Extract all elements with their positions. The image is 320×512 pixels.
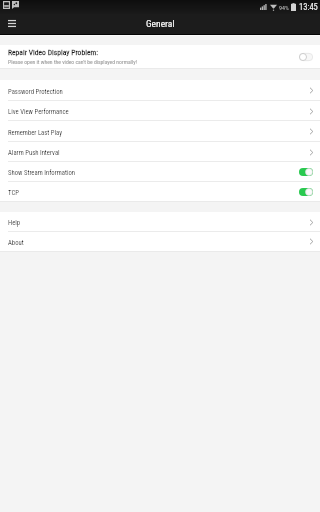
staticText: Alarm Push Interval — [8, 149, 60, 157]
staticText: Password Protection — [8, 88, 63, 96]
staticText: 94% — [279, 4, 289, 11]
staticText: Remember Last Play — [8, 129, 63, 137]
staticText: Please open it when the video can't be d… — [8, 59, 137, 66]
staticText: Repair Video Display Problem: — [8, 48, 98, 57]
staticText: Live View Performance — [8, 108, 69, 116]
button[interactable]: Switch on — [299, 168, 313, 176]
button[interactable]: Open navigation menu — [8, 20, 16, 27]
button[interactable]: Show Stream Information — [0, 162, 320, 182]
staticText: TCP — [8, 189, 19, 197]
button[interactable]: Alarm Push Interval — [0, 142, 320, 162]
staticText: 13:45 — [299, 2, 318, 12]
button[interactable]: Switch off — [299, 53, 313, 61]
staticText: About — [8, 239, 24, 247]
button[interactable]: Password Protection — [0, 80, 320, 101]
staticText: Show Stream Information — [8, 169, 76, 177]
staticText: Help — [8, 219, 21, 227]
staticText: General — [146, 18, 175, 29]
button[interactable]: TCP — [0, 182, 320, 201]
button[interactable]: Help — [0, 212, 320, 232]
button[interactable]: Switch on — [299, 188, 313, 196]
button[interactable]: Live View Performance — [0, 101, 320, 121]
button[interactable]: About — [0, 232, 320, 251]
button[interactable]: Remember Last Play — [0, 121, 320, 142]
